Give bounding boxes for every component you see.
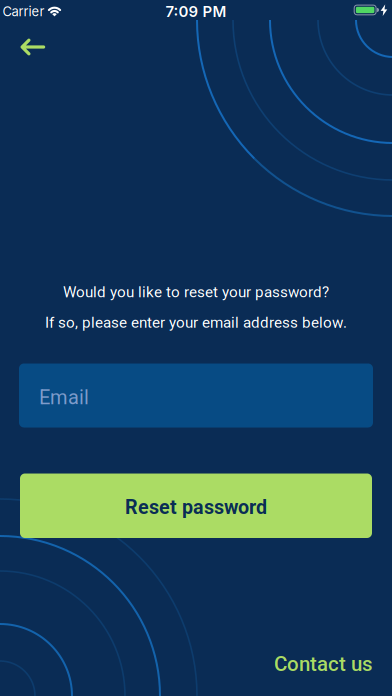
staticText: Contact us — [274, 652, 373, 676]
button[interactable]: Contact us — [274, 652, 373, 676]
staticText: If so, please enter your email address b… — [45, 314, 347, 331]
button[interactable]: Reset password — [20, 473, 372, 538]
staticText: Reset password — [125, 496, 267, 519]
staticText: Carrier — [2, 4, 44, 19]
staticText: 7:09 PM — [165, 2, 226, 20]
button[interactable]: Email — [19, 363, 373, 427]
button[interactable]: Back — [12, 31, 52, 63]
staticText: Email — [39, 386, 89, 409]
staticText: Would you like to reset your password? — [63, 283, 329, 301]
